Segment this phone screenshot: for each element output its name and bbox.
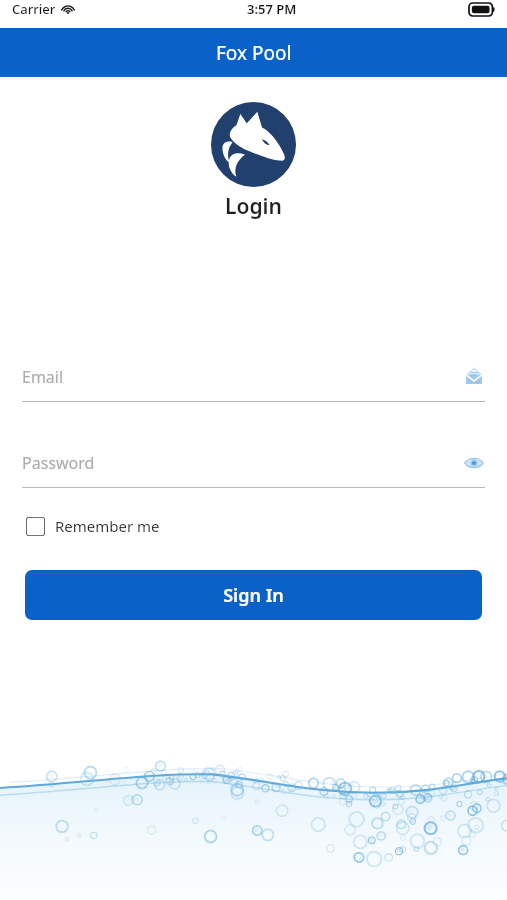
other: Email xyxy=(463,366,485,388)
staticText: Fox Pool xyxy=(216,40,292,66)
staticText: Email xyxy=(22,366,463,388)
staticText: Login xyxy=(225,192,282,221)
staticText: Password xyxy=(22,452,463,474)
button[interactable]: Sign In xyxy=(25,570,482,620)
other: Show password xyxy=(463,452,485,474)
staticText: Remember me xyxy=(55,516,160,536)
staticText: Sign In xyxy=(223,583,284,608)
button[interactable]: Remember me xyxy=(22,512,164,540)
staticText: Carrier xyxy=(12,0,56,18)
staticText: 3:57 PM xyxy=(247,0,297,18)
